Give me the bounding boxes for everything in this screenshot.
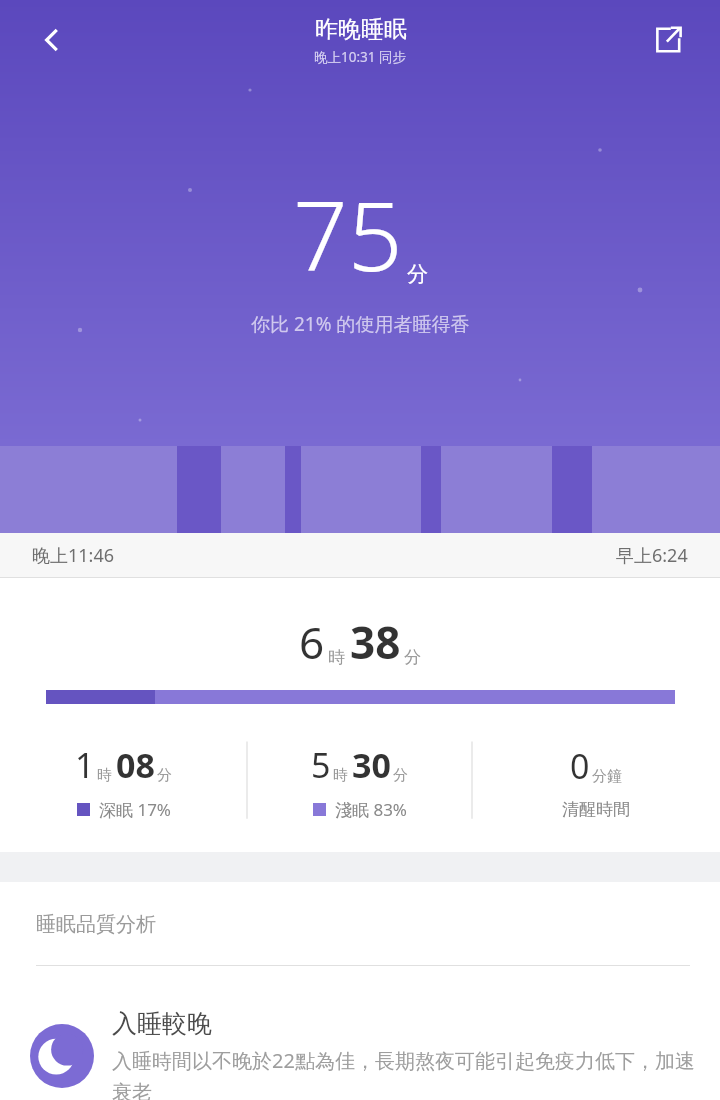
staticText: 入睡較晚: [112, 1008, 212, 1039]
staticText: 08: [116, 742, 155, 788]
button[interactable]: 5: [247, 736, 472, 826]
staticText: 你比 21% 的使用者睡得香: [251, 311, 470, 337]
staticText: 晚上11:46: [32, 543, 115, 568]
staticText: 5: [311, 742, 331, 788]
staticText: 清醒時間: [562, 799, 630, 820]
staticText: 時: [333, 766, 348, 785]
staticText: 6: [299, 612, 325, 672]
staticText: 分: [407, 261, 428, 287]
staticText: 入睡時間以不晚於22點為佳，長期熬夜可能引起免疫力低下，加速衰老: [112, 1047, 700, 1100]
staticText: 昨晚睡眠: [315, 15, 407, 44]
button[interactable]: 入睡較晚: [0, 1008, 720, 1100]
staticText: 分: [157, 766, 172, 785]
staticText: 1: [75, 742, 95, 788]
staticText: 睡眠品質分析: [36, 912, 156, 937]
staticText: 分: [404, 647, 421, 668]
staticText: 晚上10:31 同步: [314, 48, 407, 66]
staticText: 分: [393, 766, 408, 785]
button[interactable]: Back: [18, 6, 86, 74]
staticText: 0: [570, 743, 590, 789]
staticText: 深眠 17%: [99, 798, 171, 821]
staticText: 38: [350, 612, 401, 672]
staticText: 分鐘: [592, 767, 622, 786]
staticText: 早上6:24: [616, 543, 688, 568]
staticText: 75: [293, 168, 403, 299]
button[interactable]: Share: [634, 6, 702, 74]
button[interactable]: 0: [472, 736, 720, 826]
staticText: 30: [352, 742, 391, 788]
staticText: 淺眠 83%: [335, 798, 407, 821]
staticText: 時: [328, 647, 345, 668]
button[interactable]: 1: [0, 736, 247, 826]
staticText: 時: [97, 766, 112, 785]
